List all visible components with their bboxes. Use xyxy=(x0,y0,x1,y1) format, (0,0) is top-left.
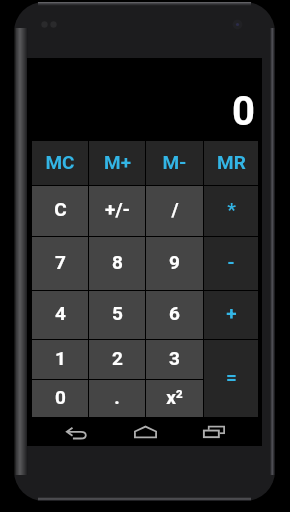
staticText: - xyxy=(227,251,235,273)
staticText: 5 xyxy=(112,302,123,324)
staticText: MC xyxy=(45,151,75,173)
button[interactable]: Back xyxy=(53,419,100,446)
button[interactable]: M- xyxy=(146,141,203,185)
button[interactable]: 2 xyxy=(89,340,145,379)
staticText: = xyxy=(226,366,237,388)
button[interactable]: 3 xyxy=(146,340,203,379)
staticText: +/- xyxy=(105,198,130,220)
staticText: MR xyxy=(217,151,246,173)
button[interactable]: = xyxy=(204,340,258,417)
button[interactable]: MR xyxy=(204,141,258,185)
button[interactable]: 0 xyxy=(32,380,88,417)
staticText: x² xyxy=(166,386,183,408)
staticText: M+ xyxy=(104,151,131,173)
button[interactable]: Home xyxy=(124,419,166,445)
button[interactable]: 4 xyxy=(32,291,88,339)
button[interactable]: . xyxy=(89,380,145,417)
button[interactable]: M+ xyxy=(89,141,145,185)
button[interactable]: Recents xyxy=(193,419,235,445)
staticText: 7 xyxy=(55,251,66,273)
button[interactable]: + xyxy=(204,291,258,339)
staticText: / xyxy=(171,198,179,220)
staticText: + xyxy=(226,302,237,324)
staticText: 4 xyxy=(55,302,66,324)
button[interactable]: 6 xyxy=(146,291,203,339)
staticText: 0 xyxy=(55,386,66,408)
button[interactable]: 9 xyxy=(146,237,203,290)
button[interactable]: 5 xyxy=(89,291,145,339)
button[interactable]: C xyxy=(32,186,88,236)
button[interactable]: +/- xyxy=(89,186,145,236)
button[interactable]: x² xyxy=(146,380,203,417)
staticText: 1 xyxy=(55,347,66,369)
button[interactable]: - xyxy=(204,237,258,290)
staticText: * xyxy=(227,198,236,220)
staticText: 9 xyxy=(169,251,180,273)
staticText: 6 xyxy=(169,302,180,324)
button[interactable]: 1 xyxy=(32,340,88,379)
button[interactable]: 7 xyxy=(32,237,88,290)
staticText: M- xyxy=(162,151,187,173)
button[interactable]: / xyxy=(146,186,203,236)
button[interactable]: 8 xyxy=(89,237,145,290)
staticText: 8 xyxy=(112,251,123,273)
staticText: C xyxy=(54,198,67,220)
staticText: 2 xyxy=(112,347,123,369)
button[interactable]: * xyxy=(204,186,258,236)
staticText: 3 xyxy=(169,347,180,369)
staticText: . xyxy=(114,386,120,408)
staticText: 0 xyxy=(232,88,255,135)
button[interactable]: MC xyxy=(32,141,88,185)
